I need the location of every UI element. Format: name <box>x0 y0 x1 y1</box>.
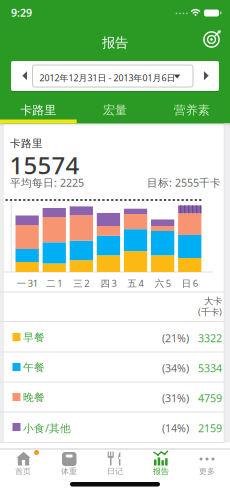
staticText: 4759 <box>198 391 222 405</box>
staticText: 日 6 <box>182 277 198 289</box>
staticText: 三 2 <box>73 277 89 289</box>
staticText: 宏量 <box>103 103 127 118</box>
staticText: 9:29 <box>11 5 32 20</box>
staticText: (21%) <box>162 331 189 345</box>
staticText: 首页 <box>15 466 31 476</box>
staticText: 2012年12月31日 - 2013年01月6日 <box>39 72 175 84</box>
staticText: 晚餐 <box>23 391 45 404</box>
staticText: 小食/其他 <box>23 421 71 435</box>
staticText: 卡路里 <box>10 137 43 150</box>
staticText: 目标: 2555千卡 <box>147 175 221 190</box>
staticText: 一 31 <box>17 277 38 289</box>
staticText: 5334 <box>198 361 222 375</box>
staticText: 报告 <box>102 34 128 51</box>
staticText: 营养素 <box>174 103 210 118</box>
staticText: (31%) <box>162 391 189 405</box>
staticText: 六 5 <box>155 277 171 289</box>
staticText: 二 1 <box>46 277 62 289</box>
staticText: 报告 <box>153 466 169 476</box>
staticText: 体重 <box>61 466 77 476</box>
staticText: 大卡 <box>204 295 222 307</box>
staticText: 早餐 <box>23 331 45 344</box>
staticText: 日记 <box>107 466 123 476</box>
staticText: 2159 <box>198 421 222 435</box>
staticText: (千卡) <box>198 305 222 318</box>
staticText: 四 3 <box>100 277 116 289</box>
staticText: 午餐 <box>23 361 45 374</box>
staticText: 五 4 <box>128 277 144 289</box>
staticText: 更多 <box>199 466 215 476</box>
staticText: 卡路里 <box>20 103 56 118</box>
staticText: (14%) <box>162 421 189 435</box>
staticText: 3322 <box>198 331 222 345</box>
staticText: 平均每日: 2225 <box>10 175 84 190</box>
staticText: 15574 <box>9 149 79 181</box>
staticText: (34%) <box>162 361 189 375</box>
